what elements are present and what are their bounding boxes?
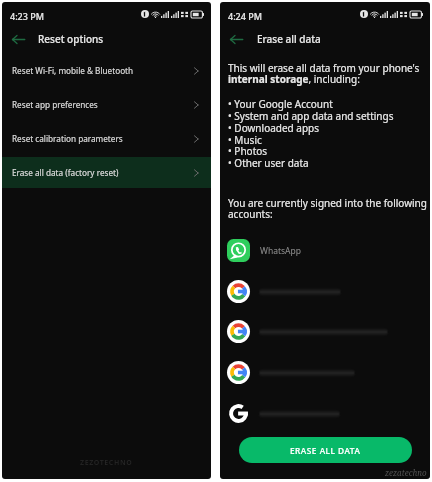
button[interactable]: WhatsApp xyxy=(220,233,430,267)
button[interactable]: Erase all data (factory reset) xyxy=(2,157,211,188)
staticText: Reset Wi-Fi, mobile & Bluetooth xyxy=(12,65,193,76)
button[interactable]: Navigate up xyxy=(224,27,248,51)
staticText: This will erase all data from your phone… xyxy=(228,61,422,86)
staticText: • Downloaded apps xyxy=(228,121,320,135)
staticText: Reset options xyxy=(38,32,104,46)
staticText: Erase all data (factory reset) xyxy=(12,167,193,178)
staticText: ERASE ALL DATA xyxy=(290,445,361,456)
button[interactable] xyxy=(220,274,430,308)
button[interactable] xyxy=(220,314,430,348)
button[interactable]: Reset app preferences xyxy=(2,89,211,120)
staticText: WhatsApp xyxy=(260,245,301,257)
button[interactable] xyxy=(220,355,430,389)
staticText: • Other user data xyxy=(228,156,309,170)
staticText: 4:23 PM xyxy=(10,10,44,22)
staticText: You are currently signed into the follow… xyxy=(228,196,429,221)
button[interactable]: ERASE ALL DATA xyxy=(239,437,412,463)
staticText: • Your Google Account xyxy=(228,97,333,111)
button[interactable] xyxy=(220,396,430,430)
staticText: Reset calibration parameters xyxy=(12,133,193,144)
staticText: Reset app preferences xyxy=(12,99,193,110)
staticText: • System and app data and settings xyxy=(228,109,394,123)
button[interactable]: Navigate up xyxy=(6,27,30,51)
button[interactable]: Reset calibration parameters xyxy=(2,123,211,154)
staticText: 4:24 PM xyxy=(228,10,262,22)
staticText: • Music xyxy=(228,133,262,147)
staticText: zezatechno xyxy=(385,467,427,478)
staticText: ZEZOTECHNO xyxy=(80,458,133,468)
staticText: • Photos xyxy=(228,144,268,158)
staticText: Erase all data xyxy=(257,32,321,46)
button[interactable]: Reset Wi-Fi, mobile & Bluetooth xyxy=(2,55,211,86)
